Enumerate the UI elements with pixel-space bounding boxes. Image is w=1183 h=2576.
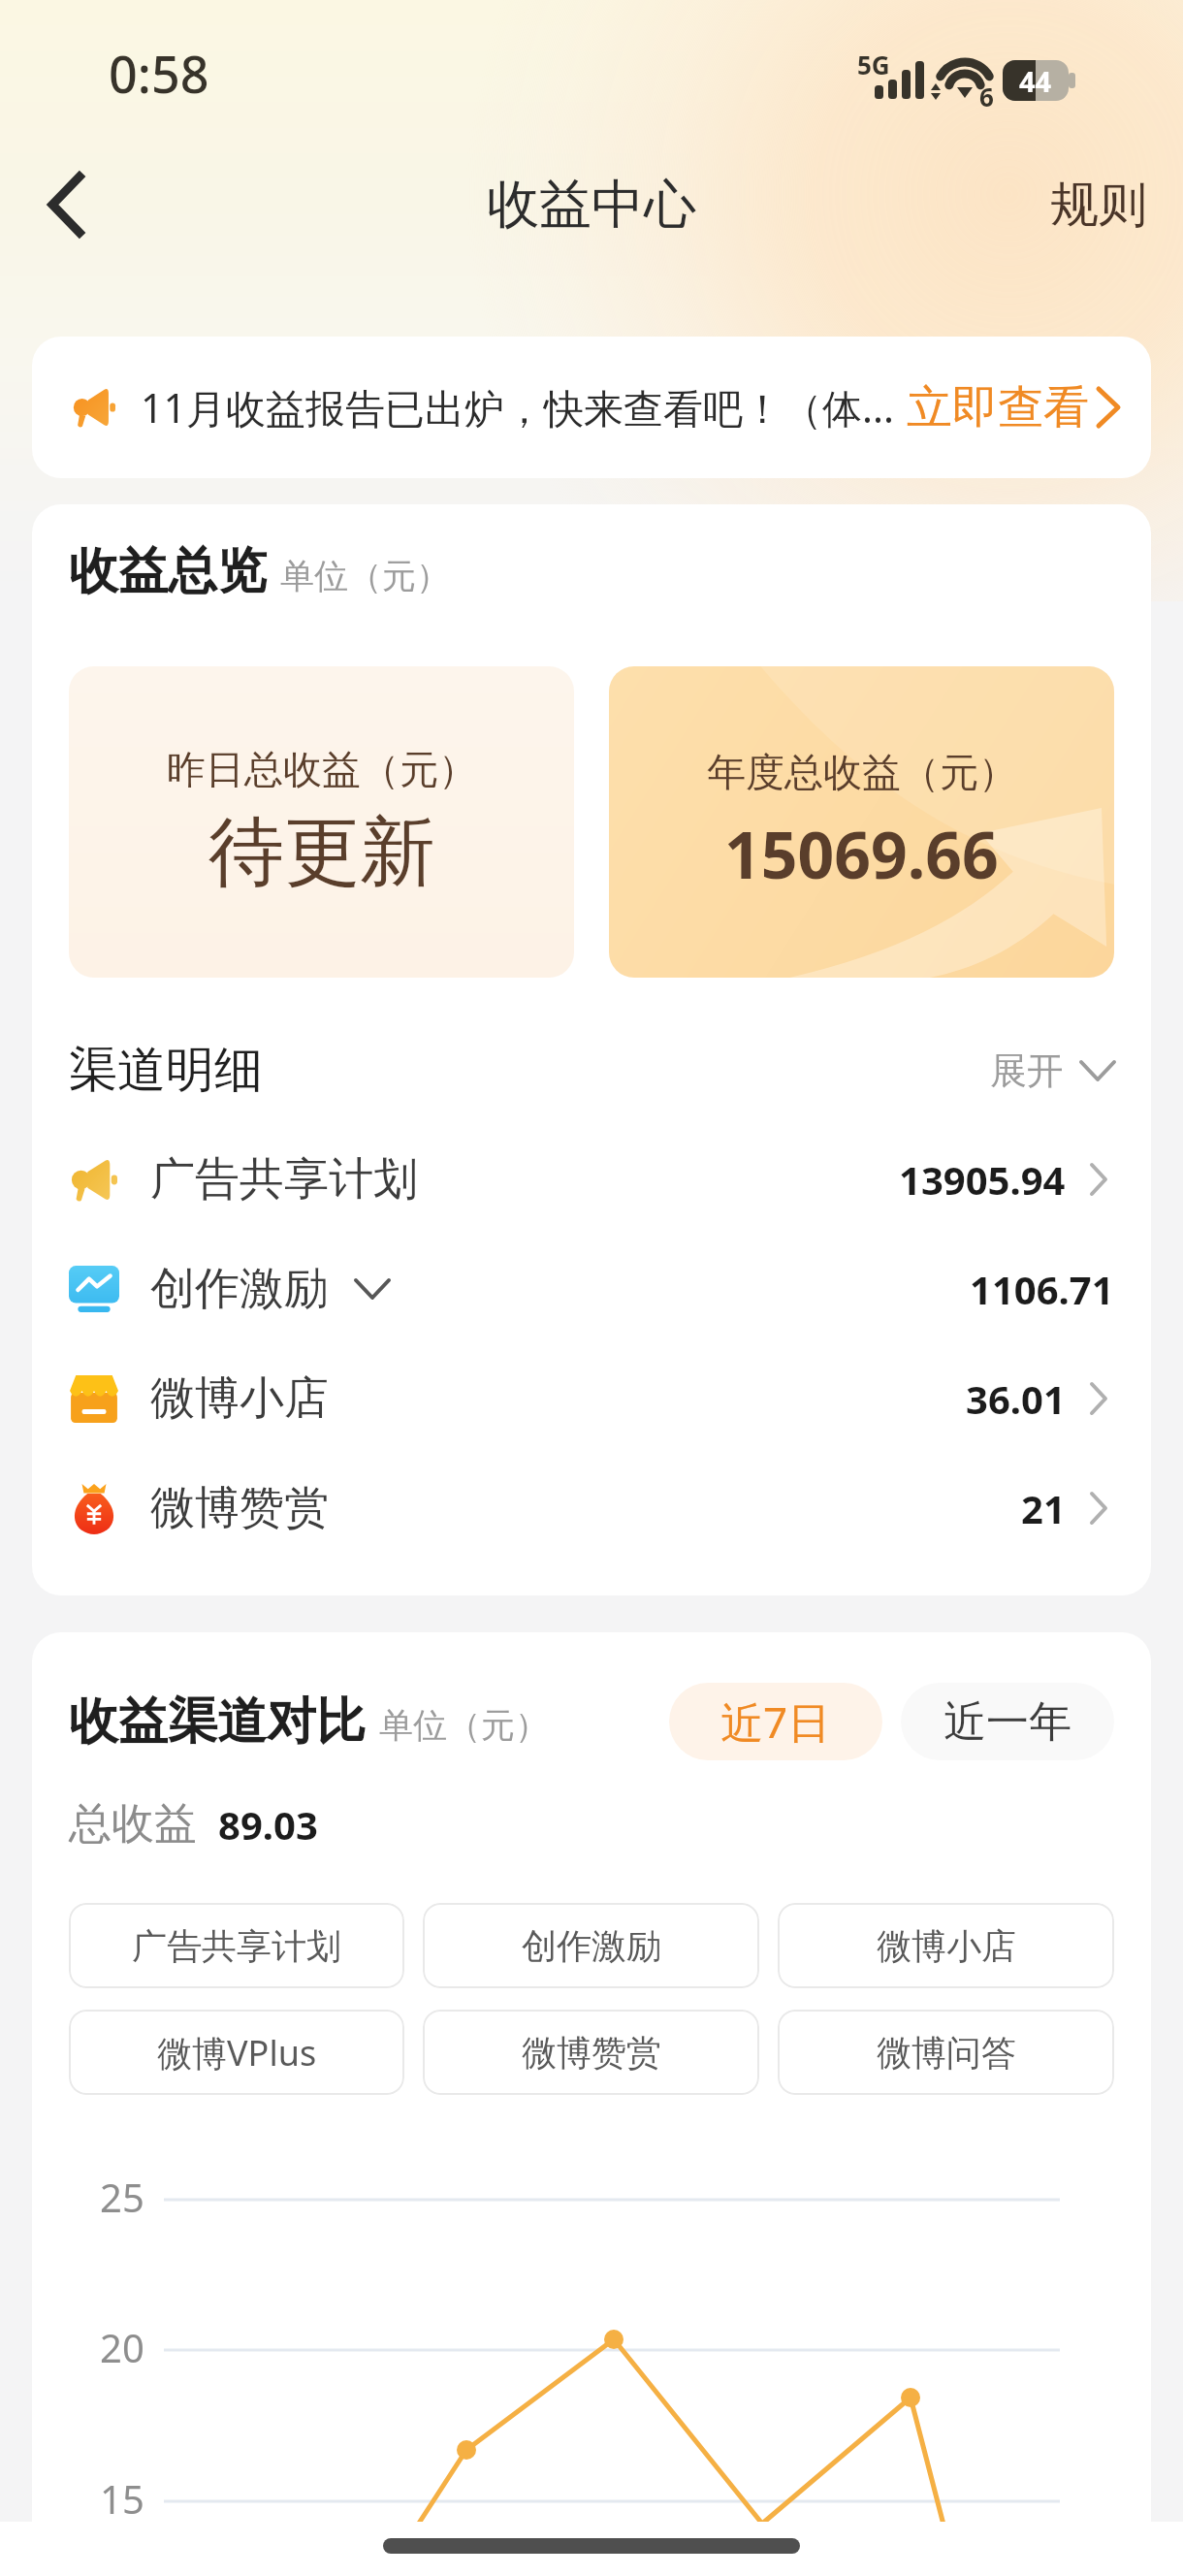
staticText: 年度总收益（元） xyxy=(707,748,1017,796)
staticText: 11月收益报告已出炉，快来查看吧！（体... xyxy=(141,380,894,435)
staticText: 总收益 xyxy=(69,1797,197,1851)
staticText: 收益中心 xyxy=(487,172,696,238)
staticText: 微博问答 xyxy=(877,2031,1016,2075)
button[interactable]: 规则 xyxy=(1011,151,1183,259)
staticText: 收益总览 xyxy=(69,540,267,602)
staticText: 89.03 xyxy=(218,1798,318,1851)
staticText: 1106.71 xyxy=(970,1263,1114,1315)
staticText: 创作激励 xyxy=(522,1924,661,1968)
staticText: 5G xyxy=(857,48,890,81)
staticText: 待更新 xyxy=(208,805,435,900)
button[interactable]: 微博VPlus xyxy=(69,2010,404,2095)
staticText: 6 xyxy=(979,80,994,113)
staticText: 0:58 xyxy=(109,39,209,108)
staticText: 15 xyxy=(100,2472,144,2525)
staticText: 44 xyxy=(1019,62,1052,100)
staticText: 收益渠道对比 xyxy=(69,1690,366,1753)
button[interactable]: 微博小店 xyxy=(778,1903,1114,1988)
staticText: 立即查看 xyxy=(907,379,1089,436)
button[interactable]: 近一年 xyxy=(901,1683,1114,1760)
staticText: 微博VPlus xyxy=(157,2029,317,2077)
button[interactable]: 创作激励 xyxy=(423,1903,759,1988)
button[interactable]: 微博赞赏 xyxy=(69,1453,1114,1562)
staticText: 昨日总收益（元） xyxy=(167,745,477,793)
button[interactable]: 微博问答 xyxy=(778,2010,1114,2095)
staticText: 36.01 xyxy=(966,1372,1066,1425)
staticText: 微博赞赏 xyxy=(522,2031,661,2075)
button[interactable]: 近7日 xyxy=(669,1683,882,1760)
button[interactable]: 昨日总收益（元） xyxy=(69,666,574,978)
staticText: 广告共享计划 xyxy=(150,1151,418,1207)
button[interactable]: 广告共享计划 xyxy=(69,1903,404,1988)
staticText: 单位（元） xyxy=(379,1704,549,1747)
staticText: 20 xyxy=(100,2321,144,2373)
button[interactable]: 11月收益报告已出炉，快来查看吧！（体... xyxy=(32,337,1151,478)
button[interactable]: 微博小店 xyxy=(69,1343,1114,1453)
button[interactable]: Back xyxy=(11,149,121,260)
staticText: 单位（元） xyxy=(280,555,450,597)
staticText: 创作激励 xyxy=(150,1261,329,1317)
staticText: 微博小店 xyxy=(877,1924,1016,1968)
staticText: 21 xyxy=(1021,1482,1066,1534)
button[interactable]: 微博赞赏 xyxy=(423,2010,759,2095)
staticText: 微博小店 xyxy=(150,1370,329,1427)
staticText: 广告共享计划 xyxy=(132,1924,341,1968)
button[interactable]: 展开 xyxy=(990,1047,1114,1094)
staticText: 15069.66 xyxy=(724,810,999,897)
button[interactable]: 年度总收益（元） xyxy=(609,666,1114,978)
button[interactable]: 创作激励 xyxy=(69,1234,1114,1343)
staticText: 13905.94 xyxy=(899,1153,1066,1206)
staticText: 微博赞赏 xyxy=(150,1480,329,1536)
staticText: 25 xyxy=(100,2171,144,2223)
staticText: 近一年 xyxy=(943,1695,1071,1749)
staticText: 展开 xyxy=(990,1047,1064,1094)
staticText: 渠道明细 xyxy=(69,1040,263,1101)
staticText: 近7日 xyxy=(720,1692,831,1751)
staticText: 规则 xyxy=(1050,175,1147,236)
button[interactable]: 广告共享计划 xyxy=(69,1124,1114,1234)
